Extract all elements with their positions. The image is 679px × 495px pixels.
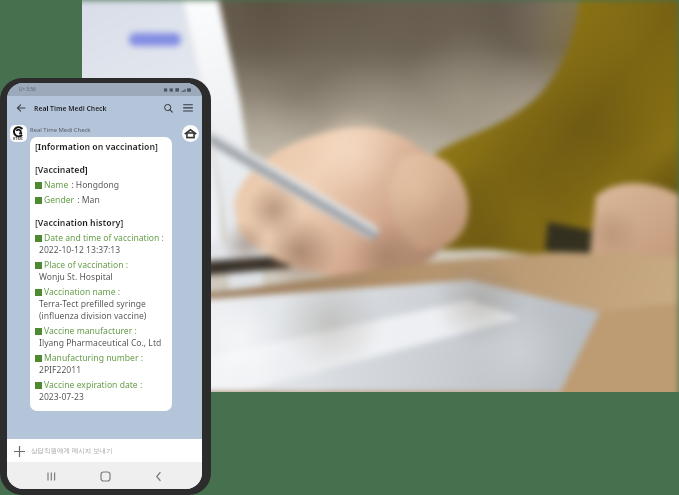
staticText: Real Time Medi Check <box>34 104 107 113</box>
button[interactable]: Back <box>13 100 29 116</box>
staticText: Name <box>44 179 69 191</box>
button[interactable]: Add attachment <box>12 444 26 458</box>
staticText: RTMC <box>13 136 24 141</box>
staticText: Ilyang Pharmaceutical Co., Ltd <box>39 337 162 349</box>
staticText: Real Time Medi Check <box>30 126 91 134</box>
staticText: (influenza division vaccine) <box>39 310 147 322</box>
staticText: 2023-07-23 <box>39 391 84 403</box>
staticText: [Vaccinated] <box>35 164 88 176</box>
staticText: Place of vaccination : <box>44 259 128 271</box>
button[interactable]: Profile <box>10 125 27 142</box>
staticText: [Vaccination history] <box>35 217 124 229</box>
staticText: Vaccination name : <box>44 286 121 298</box>
button[interactable]: Menu <box>181 101 195 115</box>
staticText: Date and time of vaccination : <box>44 232 164 244</box>
staticText: 2022-10-12 13:37:13 <box>39 244 121 256</box>
staticText: Vaccine expiration date : <box>44 379 143 391</box>
button[interactable]: Back <box>148 466 168 486</box>
staticText: Manufacturing number : <box>44 352 144 364</box>
staticText: Uⁿ 3:56 <box>19 86 36 93</box>
button[interactable]: Search <box>161 101 175 115</box>
staticText: Terra-Tect prefilled syringe <box>39 298 146 310</box>
staticText: 2PIF22011 <box>39 364 82 376</box>
staticText: 상담직원에게 메시지 보내기 <box>31 446 113 455</box>
staticText: Wonju St. Hospital <box>39 271 113 283</box>
staticText: : Man <box>75 194 100 206</box>
staticText: : Hongdong <box>69 179 120 191</box>
button[interactable]: Recent apps <box>41 466 61 486</box>
staticText: [Information on vaccination] <box>35 141 158 153</box>
button[interactable]: Home <box>182 125 199 142</box>
button[interactable]: Home <box>95 466 115 486</box>
staticText: Vaccine manufacturer : <box>44 325 137 337</box>
staticText: Gender <box>44 194 75 206</box>
